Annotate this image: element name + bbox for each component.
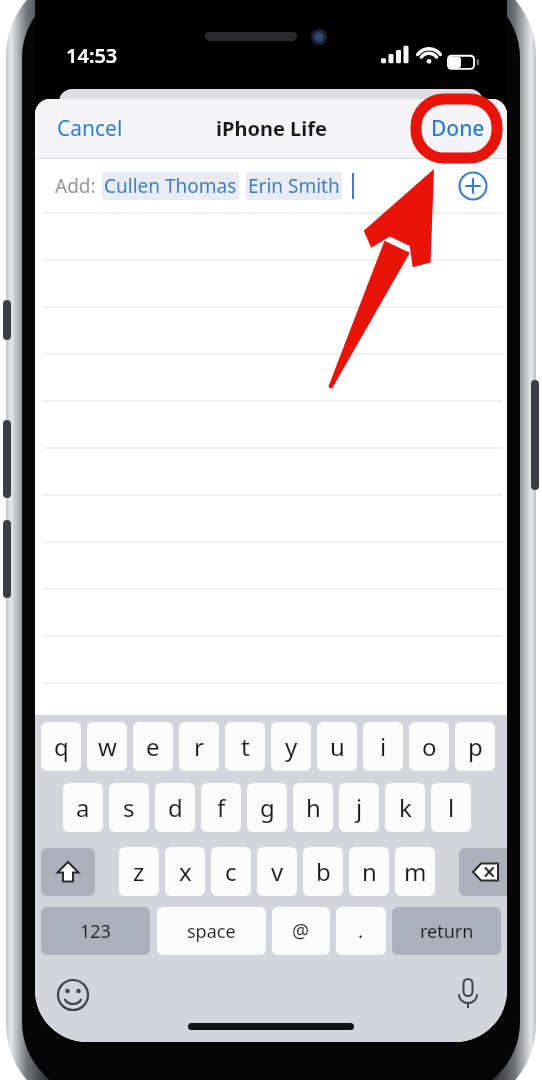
staticText: h: [306, 791, 321, 824]
button[interactable]: Emoji keyboard: [55, 977, 91, 1013]
staticText: i: [380, 730, 387, 763]
staticText: m: [404, 855, 427, 888]
staticText: .: [358, 918, 364, 944]
staticText: t: [241, 730, 250, 763]
staticText: a: [76, 791, 90, 824]
button[interactable]: Shift: [41, 848, 95, 896]
button[interactable]: l: [431, 783, 471, 832]
staticText: d: [168, 791, 183, 824]
button[interactable]: f: [201, 783, 241, 832]
staticText: u: [330, 730, 345, 763]
staticText: v: [271, 855, 284, 888]
button[interactable]: Dictation: [449, 973, 487, 1011]
button[interactable]: e: [133, 722, 173, 771]
button[interactable]: u: [317, 722, 357, 771]
staticText: s: [123, 791, 135, 824]
staticText: @: [292, 918, 310, 944]
staticText: q: [54, 730, 69, 763]
button[interactable]: r: [179, 722, 219, 771]
staticText: Done: [431, 114, 485, 143]
button[interactable]: c: [211, 847, 251, 896]
staticText: c: [225, 855, 237, 888]
staticText: return: [420, 919, 474, 944]
staticText: e: [146, 730, 160, 763]
staticText: Add:: [55, 173, 96, 199]
staticText: f: [217, 791, 226, 824]
staticText: l: [448, 791, 455, 824]
button[interactable]: j: [339, 783, 379, 832]
staticText: k: [399, 791, 412, 824]
button[interactable]: space: [157, 907, 266, 955]
button[interactable]: w: [87, 722, 127, 771]
staticText: n: [362, 855, 377, 888]
button[interactable]: Backspace: [459, 848, 507, 896]
staticText: Erin Smith: [248, 173, 340, 199]
staticText: o: [422, 730, 437, 763]
button[interactable]: k: [385, 783, 425, 832]
button[interactable]: b: [303, 847, 343, 896]
button[interactable]: Erin Smith: [246, 172, 342, 200]
button[interactable]: Add contact: [453, 166, 493, 206]
staticText: z: [133, 855, 145, 888]
button[interactable]: p: [455, 722, 495, 771]
staticText: b: [316, 855, 331, 888]
button[interactable]: return: [392, 907, 501, 955]
staticText: r: [194, 730, 204, 763]
staticText: 123: [80, 919, 111, 944]
staticText: p: [468, 730, 483, 763]
staticText: w: [98, 730, 117, 763]
staticText: y: [285, 730, 298, 763]
staticText: 14:53: [66, 42, 118, 69]
button[interactable]: x: [165, 847, 205, 896]
staticText: x: [179, 855, 192, 888]
staticText: g: [260, 791, 275, 824]
button[interactable]: g: [247, 783, 287, 832]
button[interactable]: .: [336, 907, 386, 955]
button[interactable]: m: [395, 847, 435, 896]
staticText: Cullen Thomas: [104, 173, 237, 199]
button[interactable]: @: [272, 907, 330, 955]
button[interactable]: y: [271, 722, 311, 771]
button[interactable]: v: [257, 847, 297, 896]
button[interactable]: h: [293, 783, 333, 832]
button[interactable]: Cullen Thomas: [102, 172, 239, 200]
button[interactable]: Done: [409, 102, 507, 155]
button[interactable]: q: [41, 722, 81, 771]
staticText: space: [187, 919, 236, 944]
staticText: Cancel: [57, 114, 123, 143]
button[interactable]: a: [63, 783, 103, 832]
button[interactable]: s: [109, 783, 149, 832]
staticText: iPhone Life: [216, 115, 327, 142]
button[interactable]: n: [349, 847, 389, 896]
button[interactable]: d: [155, 783, 195, 832]
button[interactable]: i: [363, 722, 403, 771]
button[interactable]: t: [225, 722, 265, 771]
button[interactable]: Cancel: [35, 102, 145, 155]
button[interactable]: o: [409, 722, 449, 771]
staticText: j: [356, 791, 363, 824]
button[interactable]: 123: [41, 907, 150, 955]
button[interactable]: z: [119, 847, 159, 896]
